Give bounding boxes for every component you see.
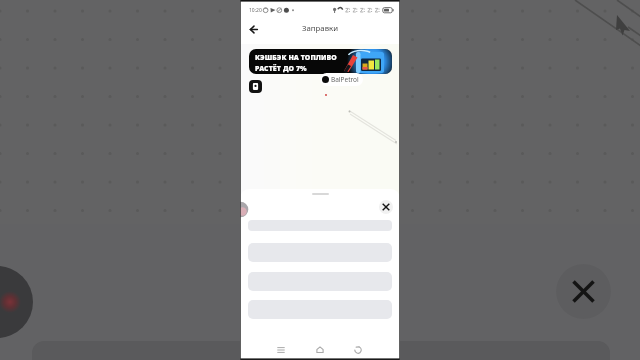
button[interactable]: Back (244, 18, 264, 38)
button[interactable]: Map layers (249, 80, 262, 93)
button[interactable]: Back (350, 342, 366, 358)
staticText: Заправки (302, 23, 339, 34)
button[interactable]: Close (556, 264, 611, 319)
button[interactable]: Recents (273, 342, 289, 358)
staticText: КЭШБЭК НА ТОПЛИВО (255, 53, 337, 62)
button[interactable]: КЭШБЭК НА ТОПЛИВО (249, 49, 392, 74)
staticText: BalPetrol (331, 75, 359, 84)
button[interactable]: BalPetrol (322, 75, 359, 84)
staticText: 10:20 (249, 7, 262, 14)
staticText: РАСТЁТ ДО 7% (255, 64, 307, 73)
button[interactable]: Home (312, 342, 328, 358)
button[interactable]: Close sheet (379, 200, 393, 214)
